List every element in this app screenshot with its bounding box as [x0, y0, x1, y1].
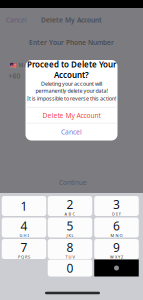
staticText: Malaysia [18, 61, 40, 69]
staticText: 6 [113, 218, 120, 234]
staticText: Cancel [61, 127, 82, 136]
staticText: Deleting your account will [41, 80, 102, 87]
staticText: 0 [66, 260, 73, 276]
button[interactable]: 8 [48, 239, 92, 259]
staticText: 🇲🇾 [10, 62, 17, 68]
staticText: 4 [20, 218, 27, 234]
staticText: J K L [66, 233, 73, 238]
button[interactable]: 2 [48, 196, 92, 216]
button[interactable]: 9 [94, 239, 139, 259]
button[interactable]: 0 [48, 259, 92, 276]
staticText: Delete My Account [42, 111, 100, 120]
button[interactable]: Cancel [6, 15, 30, 25]
staticText: M N O [110, 233, 122, 238]
staticText: T U V [65, 254, 74, 260]
staticText: Enter Your Phone Number [29, 38, 114, 47]
staticText: G H I [19, 233, 28, 238]
button[interactable]: 7 [2, 239, 46, 259]
staticText: A B C [64, 211, 75, 217]
button[interactable]: 6 [94, 217, 139, 237]
button[interactable]: 4 [2, 217, 46, 237]
button[interactable]: Delete [94, 259, 139, 276]
button[interactable]: Continue [51, 177, 95, 188]
staticText: 1 [20, 198, 27, 214]
button[interactable]: 🇲🇾 [10, 61, 50, 69]
staticText: P Q R S [18, 254, 30, 260]
button[interactable]: 1 [2, 196, 46, 216]
staticText: 3 [113, 196, 120, 212]
staticText: Account? [54, 70, 89, 80]
staticText: 7 [20, 239, 27, 255]
staticText: W X Y Z [110, 254, 123, 260]
staticText: 9 [113, 239, 120, 255]
button[interactable]: 5 [48, 217, 92, 237]
staticText: Continue [59, 178, 87, 187]
staticText: permanently delete your data! [35, 87, 107, 94]
staticText: D E F [112, 211, 121, 217]
staticText: Proceed to Delete Your [27, 59, 116, 70]
staticText: 5 [66, 218, 73, 234]
button[interactable]: Cancel [25, 123, 117, 140]
staticText: Cancel [6, 16, 27, 24]
staticText: +60 [8, 72, 20, 80]
staticText: 2 [66, 196, 73, 212]
button[interactable]: Delete My Account [25, 107, 117, 123]
staticText: It is impossible to reverse this action! [27, 95, 116, 102]
button[interactable]: 3 [94, 196, 139, 216]
staticText: 8 [66, 239, 73, 255]
staticText: Delete My Account [41, 16, 102, 24]
